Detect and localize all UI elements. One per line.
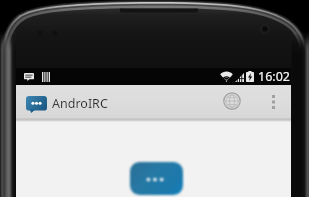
staticText: 16:02 [258, 68, 290, 85]
button[interactable]: More options [261, 90, 285, 114]
staticText: AndroIRC [52, 95, 108, 112]
button[interactable]: Connect to server [217, 86, 247, 116]
